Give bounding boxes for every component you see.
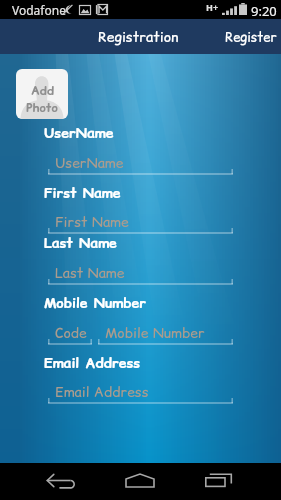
staticText: Registration [98, 27, 179, 47]
staticText: Add [31, 82, 54, 99]
staticText: Photo [26, 99, 58, 116]
button[interactable]: First Name [48, 212, 233, 234]
staticText: First Name [44, 183, 121, 203]
staticText: Code [55, 323, 87, 343]
button[interactable]: Email Address [48, 382, 233, 404]
staticText: Email Address [55, 382, 149, 402]
button[interactable]: Last Name [48, 263, 233, 285]
staticText: Register [225, 28, 277, 46]
staticText: Vodafone [12, 2, 66, 18]
staticText: UserName [55, 153, 124, 173]
staticText: H+ [206, 1, 219, 13]
staticText: First Name [55, 212, 129, 232]
button[interactable]: Register [219, 21, 281, 53]
staticText: Email Address [44, 353, 141, 373]
button[interactable]: Add Photo [16, 69, 68, 119]
button[interactable]: Back [37, 463, 87, 500]
button[interactable]: Code [48, 323, 92, 345]
staticText: Mobile Number [44, 293, 147, 313]
button[interactable]: Home [116, 463, 166, 500]
staticText: UserName [44, 123, 114, 143]
button[interactable]: Recent apps [197, 463, 247, 500]
button[interactable]: UserName [48, 153, 233, 175]
staticText: 9:20 [251, 2, 277, 20]
staticText: Mobile Number [105, 323, 205, 343]
staticText: Last Name [55, 263, 125, 283]
button[interactable]: Mobile Number [98, 323, 233, 345]
staticText: Last Name [44, 233, 117, 253]
